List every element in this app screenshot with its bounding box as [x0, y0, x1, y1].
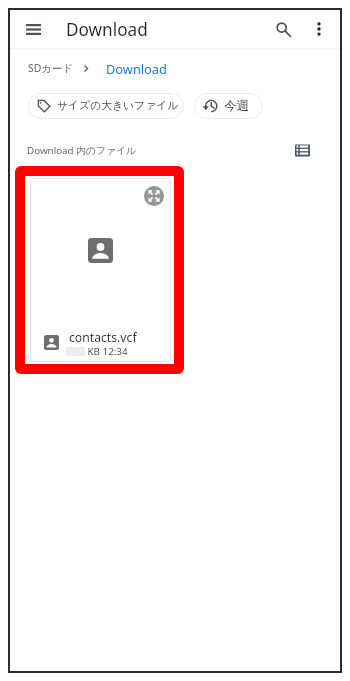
button[interactable]: SDカード: [28, 61, 73, 75]
staticText: SDカード: [28, 61, 73, 75]
button[interactable]: Search: [265, 11, 301, 47]
button[interactable]: Download: [106, 60, 167, 77]
staticText: Download 内のファイル: [27, 144, 137, 157]
button[interactable]: Expand: [144, 186, 164, 206]
staticText: 今週: [224, 98, 250, 114]
staticText: Download: [66, 18, 148, 41]
staticText: contacts.vcf: [69, 329, 137, 346]
button[interactable]: サイズの大きいファイル: [28, 93, 184, 119]
button[interactable]: Expand: [30, 178, 171, 362]
button[interactable]: More options: [301, 11, 337, 47]
staticText: KB 12:34: [85, 345, 128, 358]
staticText: サイズの大きいファイル: [57, 99, 179, 113]
staticText: Download: [106, 60, 167, 77]
button[interactable]: 今週: [194, 93, 263, 119]
button[interactable]: Menu: [15, 11, 51, 47]
button[interactable]: Change view: [290, 139, 314, 161]
